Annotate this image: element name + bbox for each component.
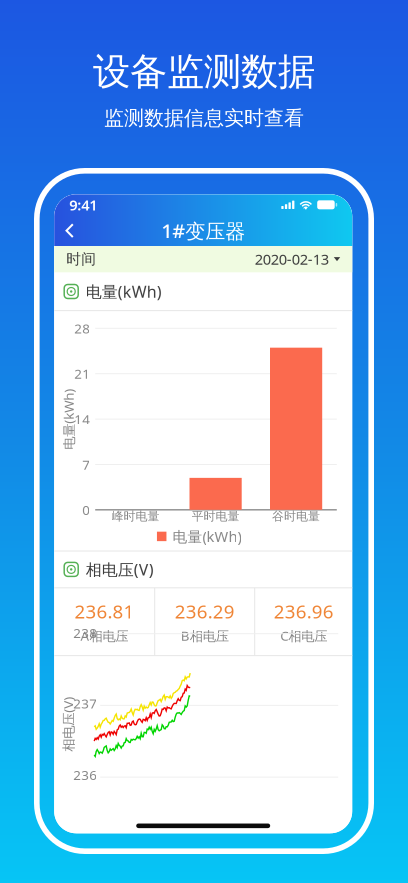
staticText: 峰时电量 <box>112 509 160 524</box>
staticText: A相电压 <box>80 627 128 644</box>
staticText: 相电压(V) <box>41 715 96 733</box>
staticText: 电量(kWh) <box>38 410 99 428</box>
staticText: 1#变压器 <box>161 217 245 244</box>
staticText: 236.81 <box>74 599 134 624</box>
staticText: 237 <box>73 694 97 712</box>
staticText: 监测数据信息实时查看 <box>104 106 304 130</box>
staticText: C相电压 <box>280 627 327 644</box>
staticText: 14 <box>74 410 90 428</box>
staticText: 0 <box>82 501 90 519</box>
staticText: 时间 <box>66 250 96 268</box>
staticText: 相电压(V) <box>86 559 154 580</box>
button[interactable]: 返回 <box>54 216 86 245</box>
staticText: 236.29 <box>175 599 235 624</box>
staticText: 28 <box>74 319 90 337</box>
staticText: 9:41 <box>69 195 97 215</box>
staticText: 7 <box>82 456 90 473</box>
staticText: 238 <box>73 624 97 642</box>
staticText: 电量(kWh) <box>172 527 241 546</box>
staticText: 21 <box>74 365 90 382</box>
staticText: 平时电量 <box>192 509 240 524</box>
staticText: 236.96 <box>274 599 334 624</box>
staticText: 谷时电量 <box>272 509 320 524</box>
button[interactable]: 选择日期 2020-02-13 <box>255 249 340 269</box>
staticText: 电量(kWh) <box>86 281 162 302</box>
staticText: B相电压 <box>181 627 229 644</box>
staticText: 236 <box>73 766 97 784</box>
staticText: 设备监测数据 <box>93 49 315 95</box>
staticText: 2020-02-13 <box>255 249 329 269</box>
